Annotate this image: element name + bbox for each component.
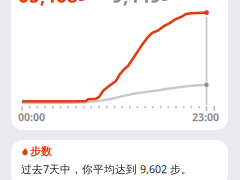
staticText: 步 [161, 0, 173, 3]
staticText: 9,449 [112, 0, 161, 8]
staticText: 00:00 [18, 110, 45, 124]
staticText: 65,468 [18, 0, 78, 8]
staticText: 步 [78, 0, 90, 3]
staticText: 23:00 [192, 110, 219, 124]
staticText: 步数 [30, 145, 52, 158]
staticText: 过去7天中，你平均达到 9,602 步。 [21, 162, 192, 176]
